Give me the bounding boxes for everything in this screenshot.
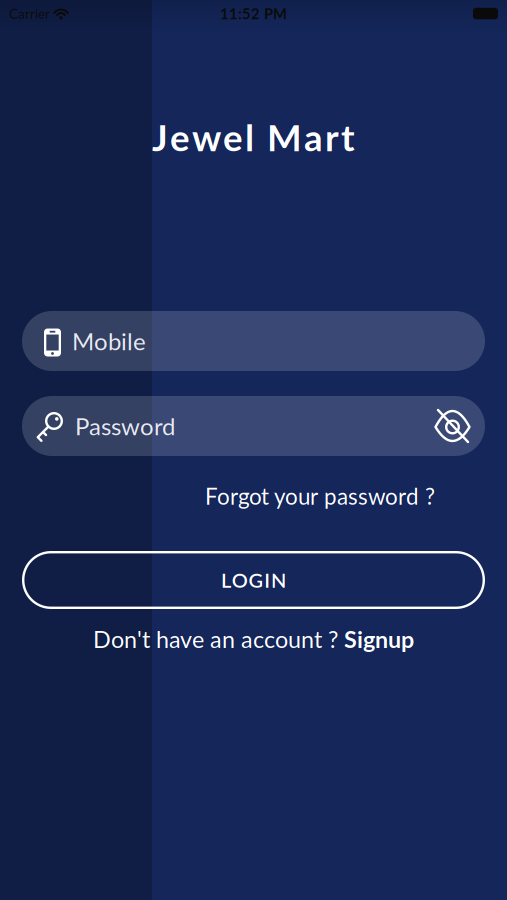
button[interactable]: Signup: [93, 626, 414, 652]
button[interactable]: Password: [0, 396, 507, 456]
button[interactable]: Mobile: [0, 311, 507, 371]
button[interactable]: Forgot your password ?: [205, 483, 435, 509]
button[interactable]: Show password: [434, 408, 471, 444]
staticText: 11:52 PM: [220, 5, 287, 22]
staticText: Mobile: [72, 327, 146, 355]
staticText: Carrier: [9, 5, 50, 21]
staticText: LOGIN: [221, 568, 286, 592]
staticText: Don't have an account ? Signup: [93, 625, 414, 653]
staticText: Password: [75, 412, 175, 440]
staticText: J e w e l M a r t: [152, 115, 355, 159]
button[interactable]: LOGIN: [0, 551, 507, 609]
staticText: Forgot your password ?: [205, 483, 435, 509]
